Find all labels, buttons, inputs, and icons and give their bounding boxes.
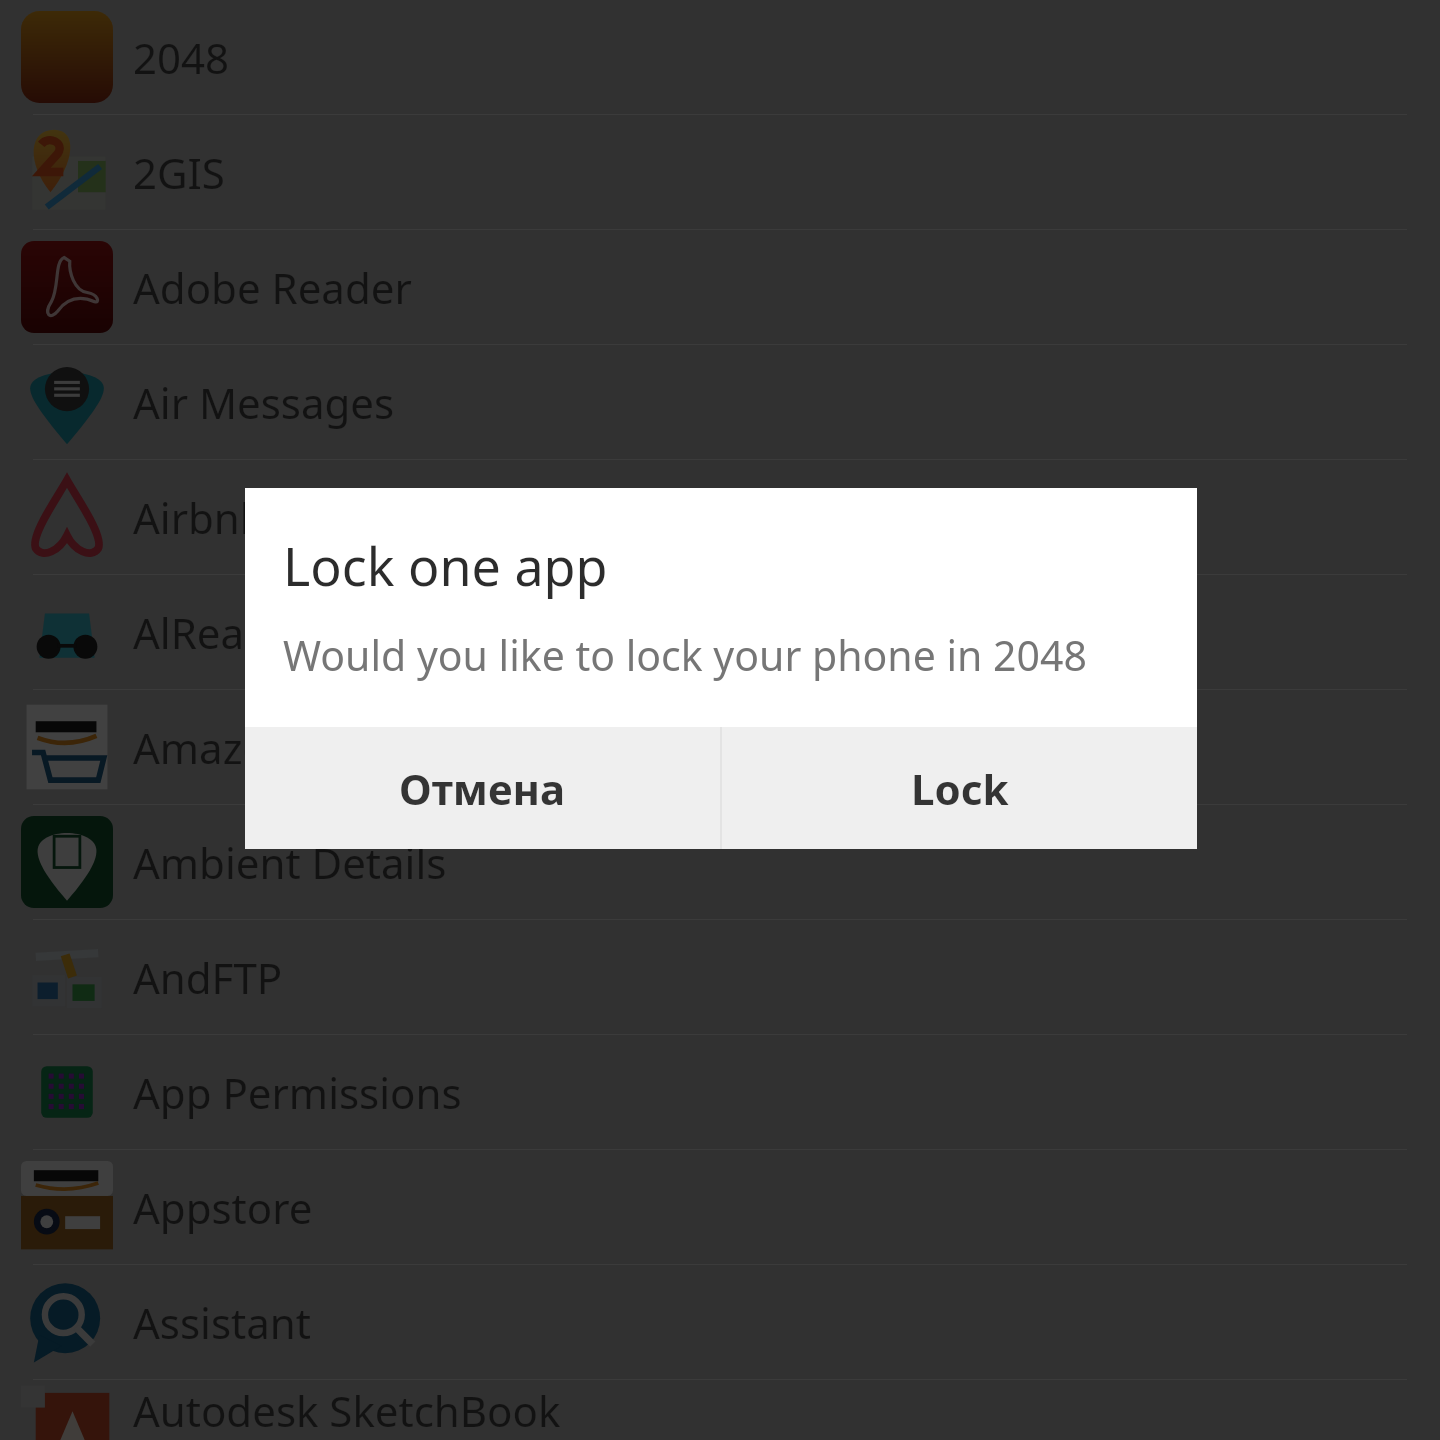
staticText: 2GIS xyxy=(133,144,225,201)
button[interactable]: Adobe Reader xyxy=(0,229,1440,344)
staticText: Would you like to lock your phone in 204… xyxy=(283,627,1177,683)
staticText: Ambient Details xyxy=(133,834,447,891)
button[interactable]: Air Messages xyxy=(0,344,1440,459)
staticText: Lock one app xyxy=(283,530,608,601)
staticText: AndFTP xyxy=(133,949,283,1006)
button[interactable]: AlReader xyxy=(0,574,1440,689)
button[interactable]: Amazon xyxy=(0,689,1440,804)
staticText: App Permissions xyxy=(133,1064,462,1121)
button[interactable]: Autodesk SketchBook xyxy=(0,1379,1440,1440)
staticText: AlReader xyxy=(133,604,311,661)
staticText: Appstore xyxy=(133,1179,313,1236)
staticText: Airbnb xyxy=(133,489,266,546)
staticText: Отмена xyxy=(399,760,566,817)
staticText: Lock xyxy=(911,760,1009,817)
button[interactable]: Ambient Details xyxy=(0,804,1440,919)
staticText: Adobe Reader xyxy=(133,259,412,316)
button[interactable]: App Permissions xyxy=(0,1034,1440,1149)
button[interactable]: Отмена xyxy=(245,727,720,849)
button[interactable]: Appstore xyxy=(0,1149,1440,1264)
button[interactable]: AndFTP xyxy=(0,919,1440,1034)
staticText: Amazon xyxy=(133,719,294,776)
staticText: Air Messages xyxy=(133,374,395,431)
button[interactable]: Airbnb xyxy=(0,459,1440,574)
staticText: 2048 xyxy=(133,29,230,86)
button[interactable]: 2048 xyxy=(0,0,1440,114)
button[interactable]: Lock xyxy=(722,727,1197,849)
staticText: Assistant xyxy=(133,1294,311,1351)
button[interactable]: Assistant xyxy=(0,1264,1440,1379)
button[interactable]: 2GIS xyxy=(0,114,1440,229)
staticText: Autodesk SketchBook xyxy=(133,1382,561,1439)
